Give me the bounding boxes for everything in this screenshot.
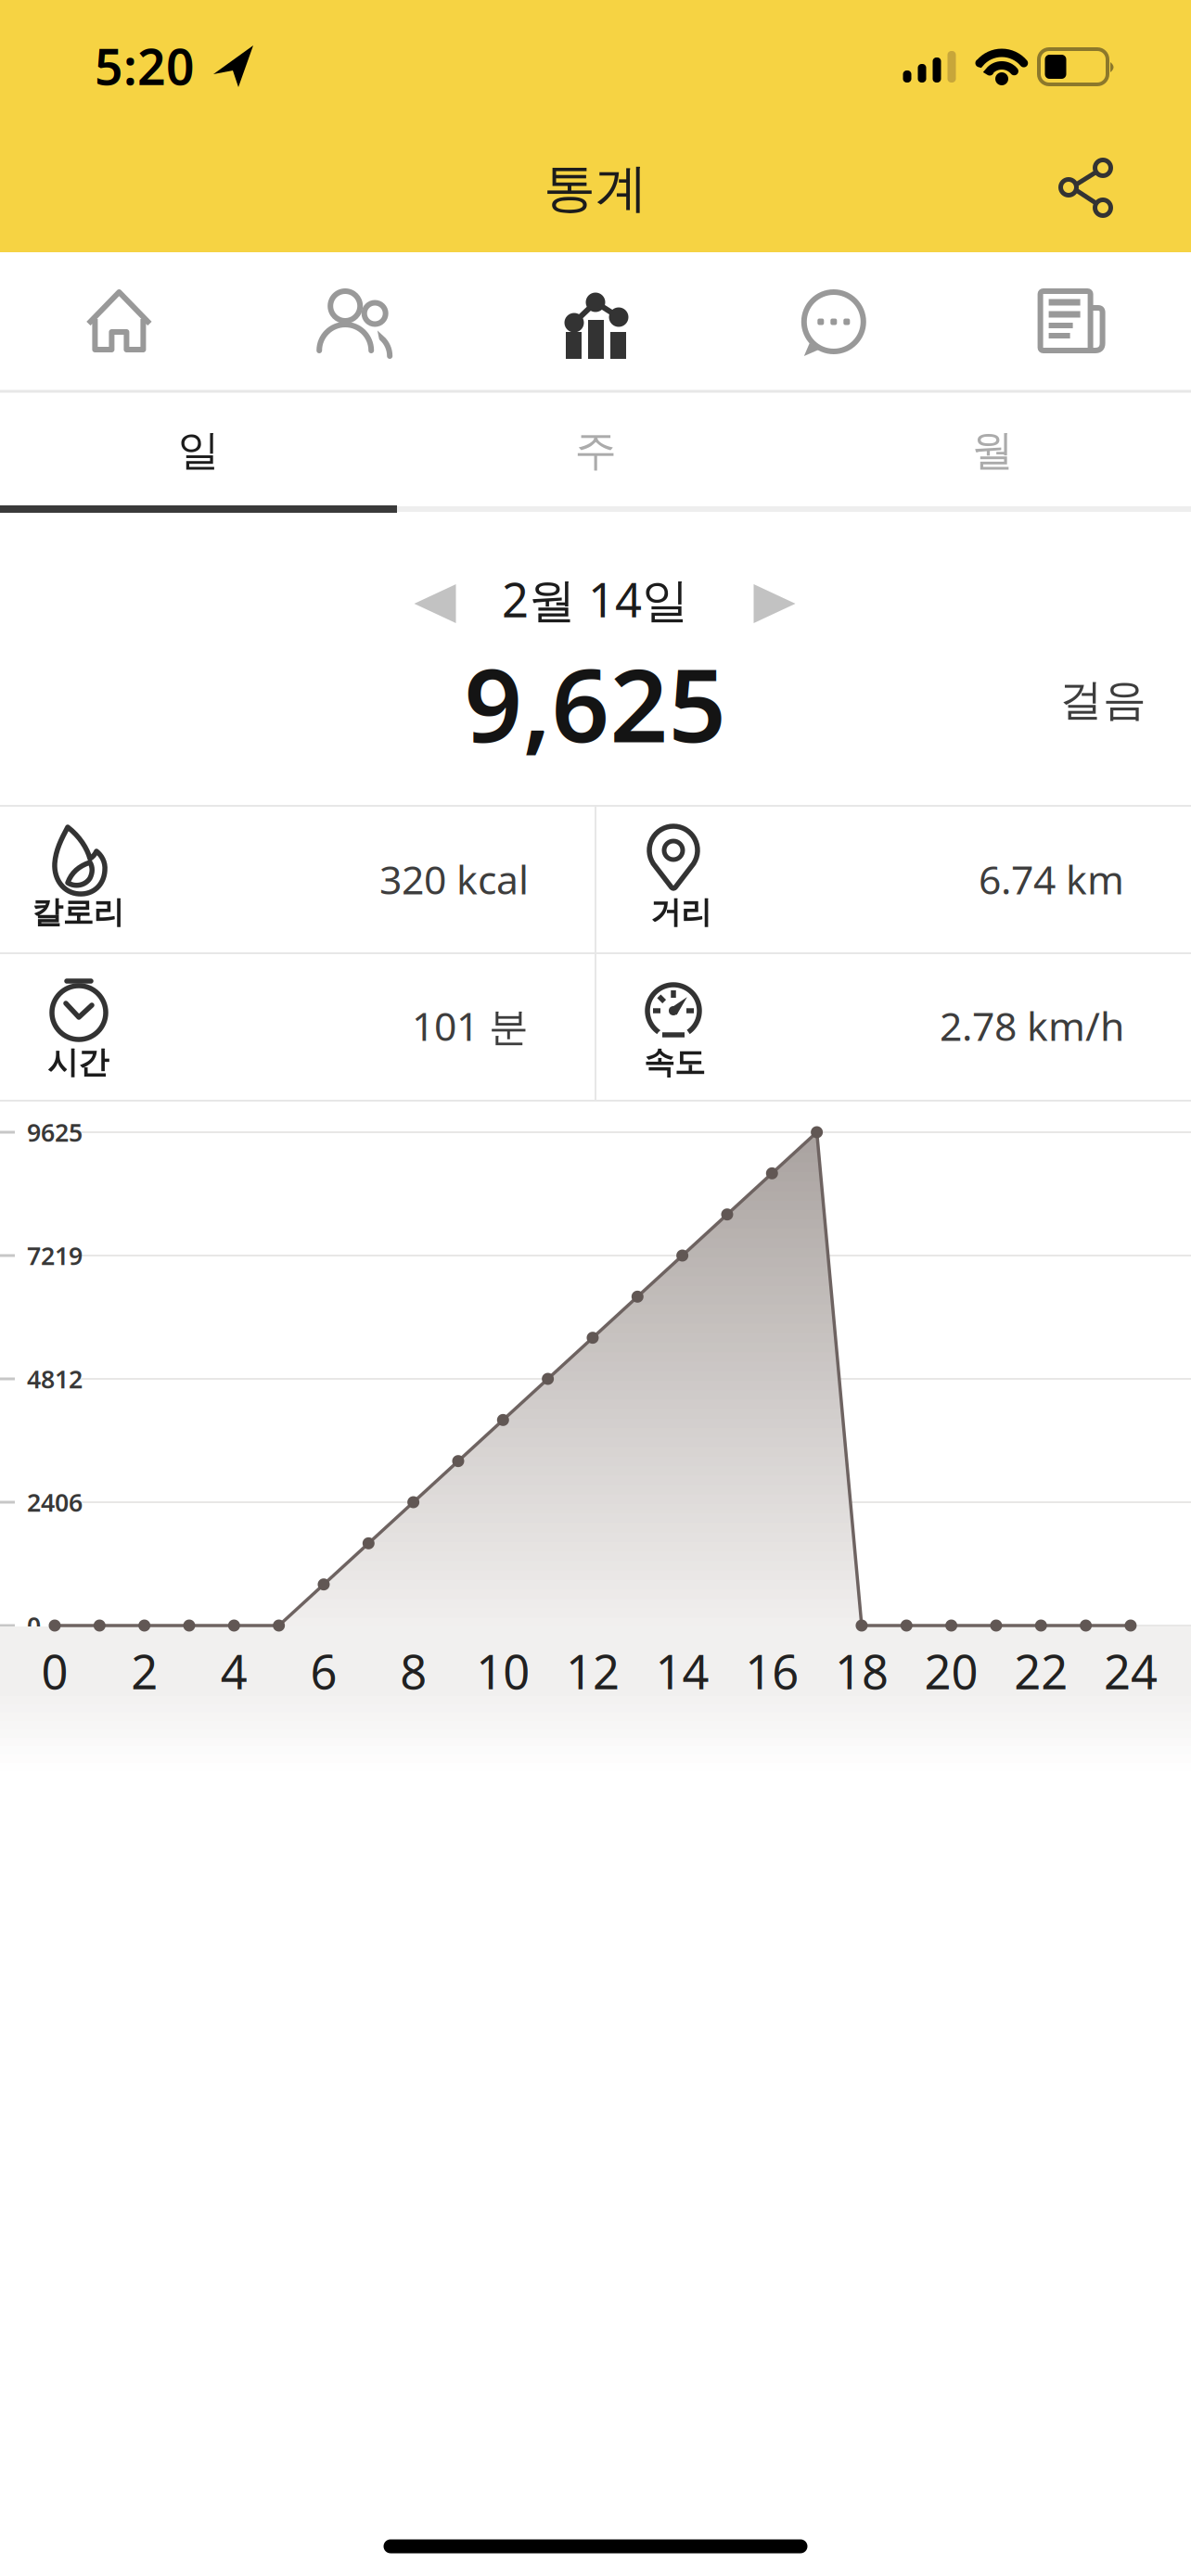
staticText: 일 [178, 425, 219, 477]
staticText: 2월 14일 [502, 568, 689, 630]
button[interactable] [412, 582, 458, 625]
staticText: 320 kcal [379, 853, 529, 905]
staticText: 8 [400, 1640, 427, 1702]
staticText: 14 [655, 1640, 709, 1702]
staticText: 10 [476, 1640, 530, 1702]
button[interactable] [1044, 146, 1137, 238]
staticText: 9,625 [464, 636, 727, 770]
button[interactable] [722, 256, 945, 386]
staticText: 시간 [47, 1044, 109, 1082]
staticText: 통계 [544, 156, 647, 220]
staticText: 거리 [650, 893, 711, 931]
staticText: 7219 [27, 1239, 83, 1272]
staticText: 6.74 km [979, 853, 1124, 905]
button[interactable] [484, 256, 707, 386]
staticText: 2 [131, 1640, 158, 1702]
staticText: 2406 [27, 1486, 83, 1519]
staticText: 12 [566, 1640, 620, 1702]
button[interactable]: 일 [0, 395, 397, 506]
staticText: 2.78 km/h [940, 999, 1124, 1052]
staticText: 101 분 [412, 999, 529, 1052]
button[interactable] [8, 256, 230, 386]
staticText: 4 [221, 1640, 247, 1702]
staticText: 칼로리 [32, 893, 124, 931]
button[interactable]: 월 [794, 395, 1191, 506]
staticText: 22 [1014, 1640, 1068, 1702]
staticText: 9625 [27, 1116, 83, 1149]
staticText: 0 [41, 1640, 68, 1702]
button[interactable]: 주 [397, 395, 794, 506]
staticText: 4812 [27, 1362, 83, 1395]
staticText: 속도 [644, 1044, 705, 1082]
staticText: 16 [745, 1640, 799, 1702]
button[interactable] [752, 582, 797, 625]
staticText: 걸음 [1059, 673, 1146, 727]
staticText: 24 [1104, 1640, 1158, 1702]
staticText: 20 [924, 1640, 978, 1702]
staticText: 6 [310, 1640, 337, 1702]
button[interactable] [961, 256, 1183, 386]
button[interactable] [246, 256, 469, 386]
staticText: 18 [835, 1640, 889, 1702]
staticText: 주 [575, 425, 616, 477]
staticText: 월 [972, 425, 1013, 477]
staticText: 5:20 [95, 33, 195, 99]
staticText: 0 [27, 1609, 41, 1642]
